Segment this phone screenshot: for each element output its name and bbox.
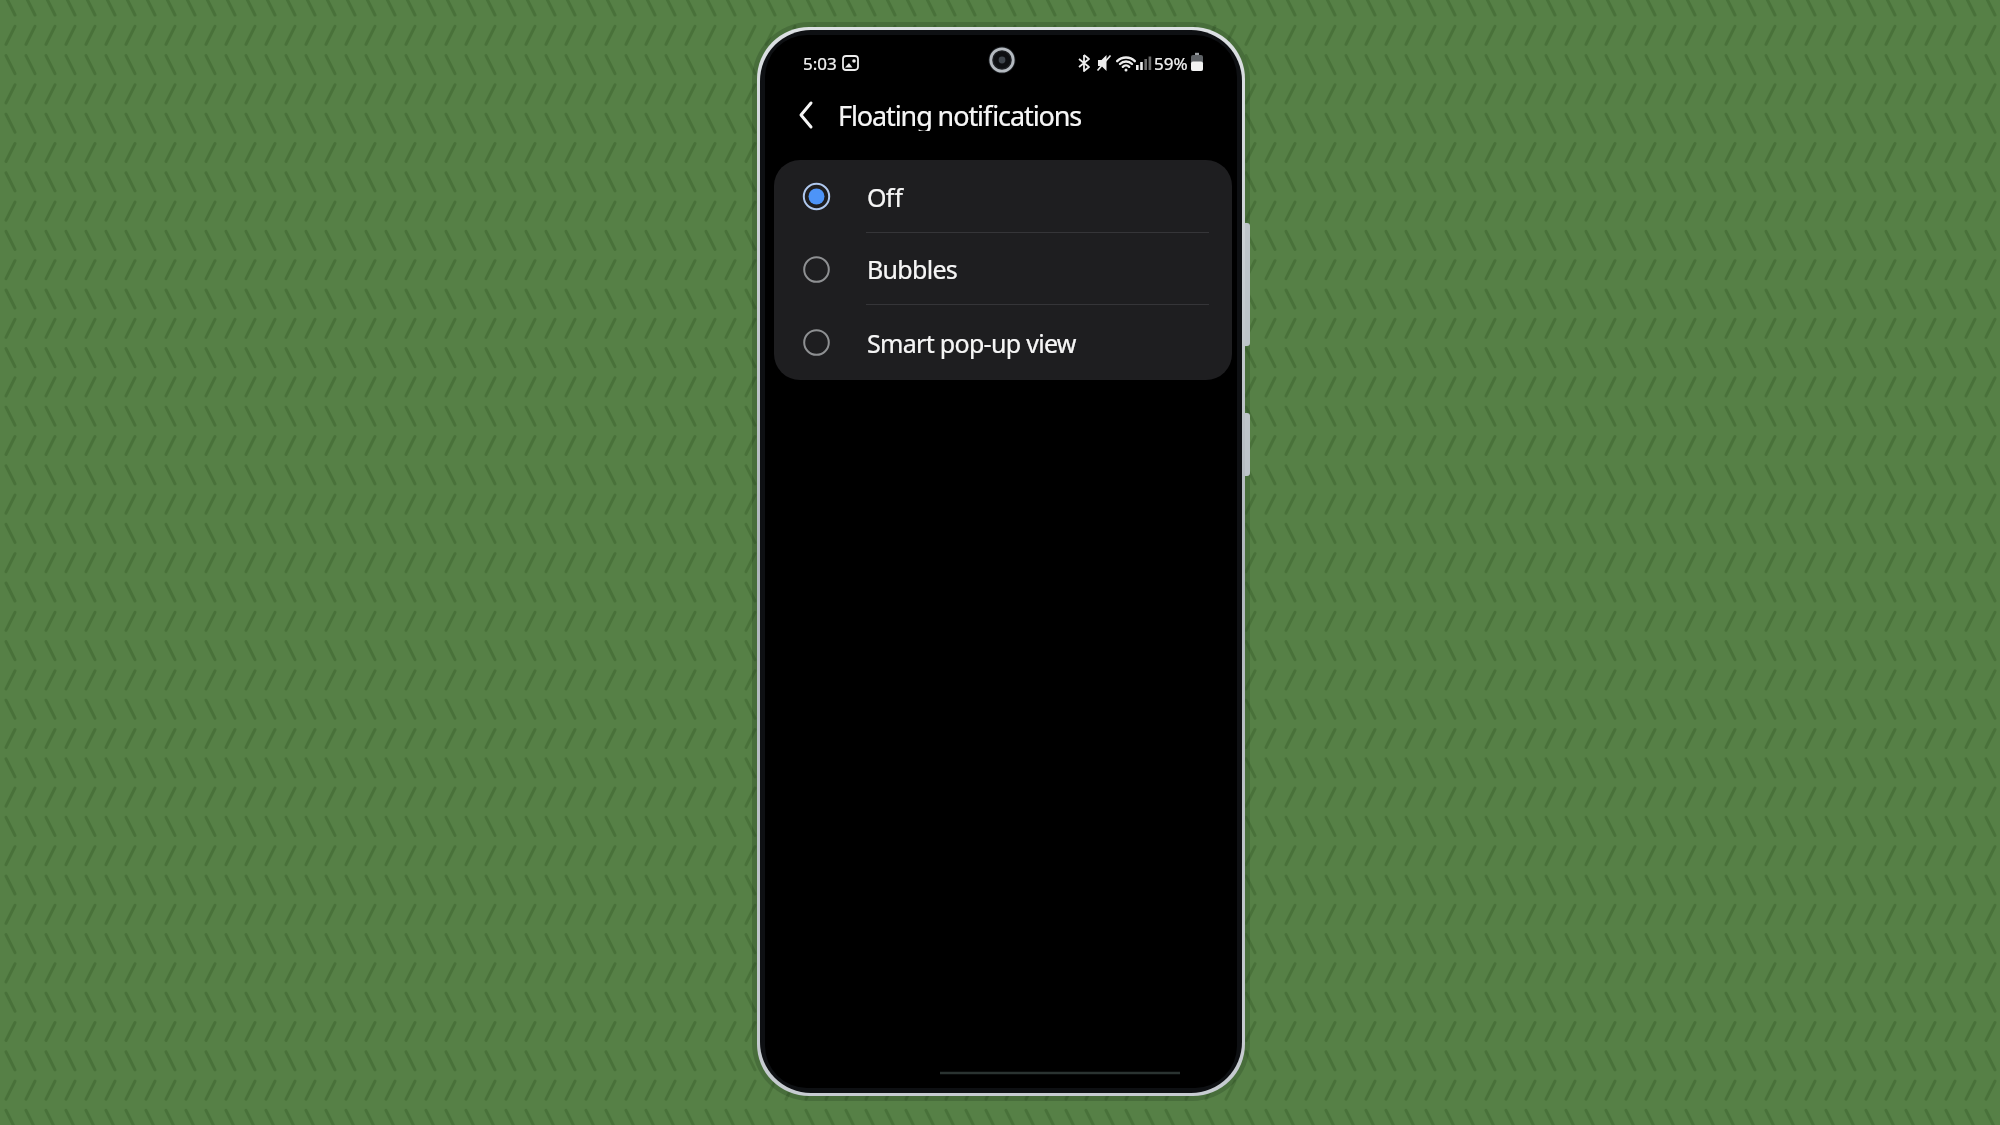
button[interactable]: Smart pop-up view: [774, 305, 1232, 380]
button[interactable]: [784, 93, 828, 137]
staticText: Floating notifications: [838, 97, 1082, 131]
staticText: Off: [867, 180, 903, 214]
staticText: 5:03: [803, 52, 837, 75]
staticText: 59%: [1154, 52, 1188, 75]
button[interactable]: Bubbles: [774, 233, 1232, 305]
button[interactable]: Off: [774, 160, 1232, 233]
staticText: Bubbles: [867, 252, 958, 286]
staticText: Smart pop-up view: [867, 326, 1076, 360]
